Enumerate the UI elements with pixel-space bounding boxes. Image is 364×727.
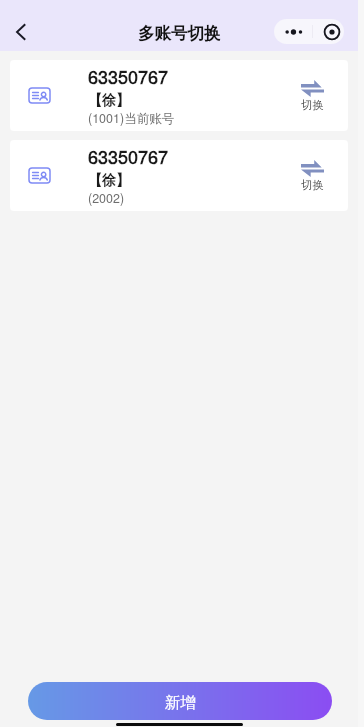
button[interactable]: 新增 [28, 682, 332, 720]
staticText: 新增 [165, 693, 196, 713]
button[interactable]: More [274, 19, 312, 44]
staticText: 切换 [301, 178, 324, 192]
staticText: 多账号切换 [138, 23, 221, 44]
staticText: (1001)当前账号 [88, 109, 175, 127]
button[interactable]: Back [7, 18, 35, 46]
staticText: 63350767 [88, 143, 169, 169]
button[interactable]: Close mini program [313, 19, 344, 44]
button[interactable]: 63350767 [10, 140, 348, 211]
button[interactable]: 切换 [294, 159, 330, 192]
staticText: 【徐】 [88, 92, 130, 110]
button[interactable]: 63350767 [10, 60, 348, 131]
button[interactable]: 切换 [294, 79, 330, 112]
staticText: 63350767 [88, 63, 169, 89]
staticText: 切换 [301, 98, 324, 112]
staticText: 【徐】 [88, 172, 130, 190]
staticText: (2002) [88, 189, 125, 207]
